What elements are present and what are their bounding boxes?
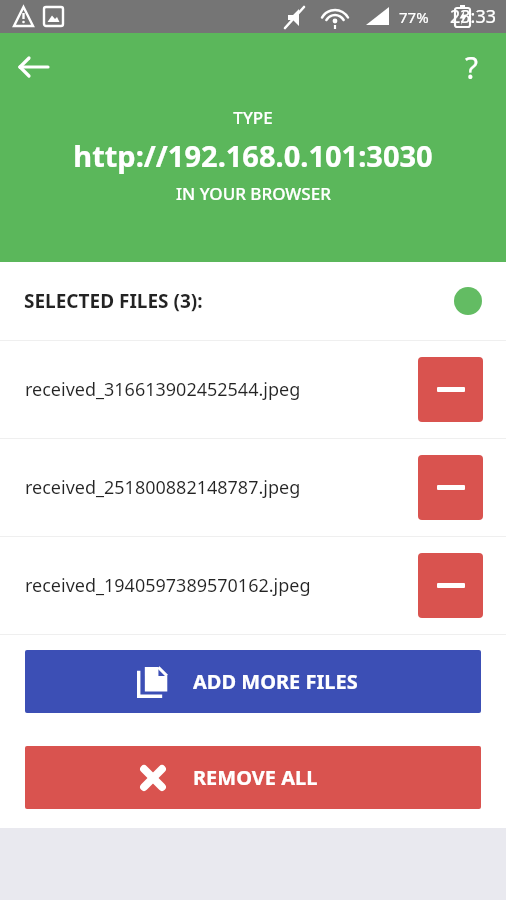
button[interactable]: received_1940597389570162.jpeg: [0, 537, 506, 634]
staticText: TYPE: [233, 106, 273, 129]
staticText: 77%: [399, 7, 429, 27]
button[interactable]: ADD MORE FILES: [25, 650, 481, 713]
button[interactable]: Remove received_316613902452544.jpeg: [418, 357, 483, 422]
button[interactable]: Remove received_251800882148787.jpeg: [418, 455, 483, 520]
button[interactable]: Remove received_1940597389570162.jpeg: [418, 553, 483, 618]
staticText: received_1940597389570162.jpeg: [25, 573, 410, 598]
staticText: ADD MORE FILES: [193, 668, 358, 695]
staticText: ?: [465, 47, 479, 88]
button[interactable]: REMOVE ALL: [25, 746, 481, 809]
button[interactable]: SELECTED FILES (3):: [0, 262, 506, 340]
button[interactable]: received_251800882148787.jpeg: [0, 439, 506, 536]
staticText: http://192.168.0.101:3030: [73, 136, 433, 175]
staticText: 23:33: [450, 4, 497, 29]
staticText: received_251800882148787.jpeg: [25, 475, 410, 500]
staticText: SELECTED FILES (3):: [24, 288, 203, 314]
staticText: REMOVE ALL: [193, 764, 318, 791]
button[interactable]: received_316613902452544.jpeg: [0, 341, 506, 438]
button[interactable]: Help: [450, 45, 494, 89]
staticText: received_316613902452544.jpeg: [25, 377, 410, 402]
button[interactable]: Back: [12, 45, 56, 89]
staticText: IN YOUR BROWSER: [176, 182, 331, 205]
